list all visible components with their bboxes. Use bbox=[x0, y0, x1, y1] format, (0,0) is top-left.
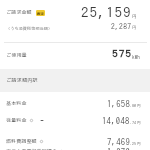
staticText: 14,048 bbox=[102, 116, 130, 125]
staticText: ご使用量 bbox=[6, 52, 27, 57]
staticText: （うち消費税等相当額） bbox=[6, 26, 53, 30]
staticText: 基本料金 bbox=[6, 101, 27, 106]
staticText: 円 bbox=[137, 103, 141, 107]
staticText: 円 bbox=[137, 120, 141, 124]
staticText: 円 bbox=[132, 25, 137, 29]
staticText: 1,658 bbox=[107, 99, 130, 108]
staticText: 7,469 bbox=[107, 137, 130, 146]
staticText: 2,287 bbox=[111, 22, 132, 30]
other: 従量料金 の説明 bbox=[29, 119, 34, 122]
button[interactable]: 基本料金 bbox=[0, 99, 150, 108]
button[interactable]: 燃料費調整額 bbox=[0, 137, 150, 146]
staticText: kWh bbox=[132, 54, 140, 59]
other: 燃料費調整額 の説明 bbox=[39, 140, 44, 143]
staticText: 1,070 bbox=[107, 147, 130, 150]
staticText: 従量料金 bbox=[6, 118, 27, 123]
other: 内訳を開く bbox=[40, 120, 44, 121]
staticText: .25 bbox=[130, 141, 136, 145]
button[interactable]: 再エネ発電促進賦課金 bbox=[0, 147, 150, 150]
staticText: .74 bbox=[130, 120, 136, 124]
staticText: 円 bbox=[132, 14, 137, 19]
staticText: 再エネ発電促進賦課金 bbox=[6, 149, 57, 150]
staticText: ご請求金額 bbox=[6, 10, 32, 15]
staticText: 確定 bbox=[37, 12, 44, 15]
staticText: 燃料費調整額 bbox=[6, 139, 37, 144]
staticText: ご請求額内訳 bbox=[6, 77, 38, 82]
staticText: 575 bbox=[112, 48, 132, 60]
staticText: .80 bbox=[130, 103, 136, 107]
staticText: 円 bbox=[137, 141, 141, 145]
button[interactable]: 確定 bbox=[36, 10, 45, 16]
staticText: 25,159 bbox=[81, 5, 132, 20]
button[interactable]: 従量料金 bbox=[0, 116, 150, 125]
